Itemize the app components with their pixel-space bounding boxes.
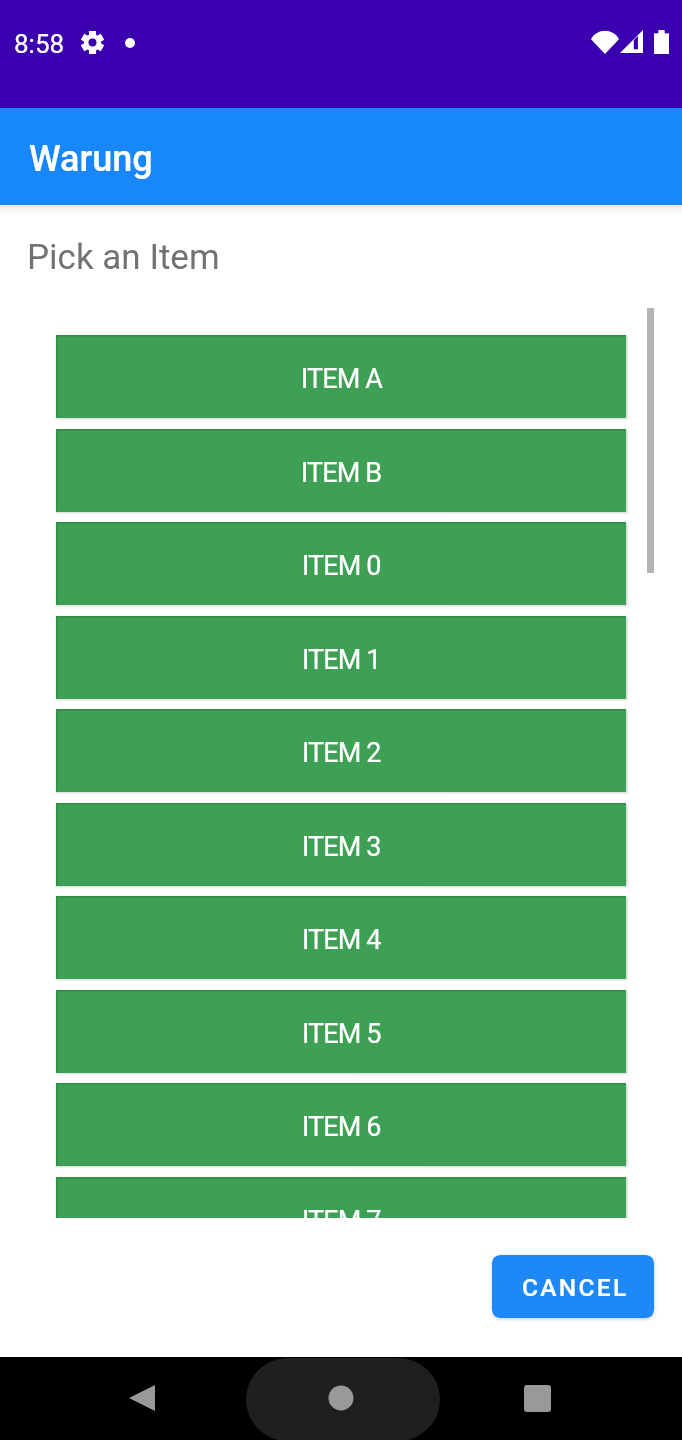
staticText: Warung	[29, 138, 153, 180]
staticText: ITEM 5	[302, 1018, 381, 1050]
staticText: ITEM B	[301, 457, 382, 489]
staticText: ITEM 3	[302, 831, 381, 863]
staticText: ITEM 7	[302, 1205, 381, 1218]
staticText: ITEM 6	[302, 1111, 381, 1143]
button[interactable]: ITEM 3	[56, 803, 626, 886]
button[interactable]: CANCEL	[492, 1255, 654, 1318]
button[interactable]: ITEM 6	[56, 1083, 626, 1166]
button[interactable]: ITEM 2	[56, 709, 626, 792]
staticText: 8:58	[14, 29, 65, 59]
staticText: ITEM 0	[302, 550, 381, 582]
staticText: CANCEL	[522, 1273, 629, 1302]
button[interactable]: Home	[320, 1377, 362, 1419]
button[interactable]: Recent apps	[516, 1377, 558, 1419]
staticText: ITEM A	[301, 363, 382, 395]
button[interactable]: ITEM 1	[56, 616, 626, 699]
button[interactable]: ITEM A	[56, 335, 626, 418]
button[interactable]: Back	[121, 1377, 163, 1419]
staticText: Pick an Item	[27, 237, 220, 278]
button[interactable]: ITEM 4	[56, 896, 626, 979]
button[interactable]: ITEM 7	[56, 1177, 626, 1218]
staticText: ITEM 4	[302, 924, 381, 956]
button[interactable]: ITEM 0	[56, 522, 626, 605]
staticText: ITEM 1	[302, 644, 381, 676]
staticText: ITEM 2	[302, 737, 381, 769]
button[interactable]: ITEM B	[56, 429, 626, 512]
button[interactable]: ITEM 5	[56, 990, 626, 1073]
other: Settings	[81, 31, 104, 54]
